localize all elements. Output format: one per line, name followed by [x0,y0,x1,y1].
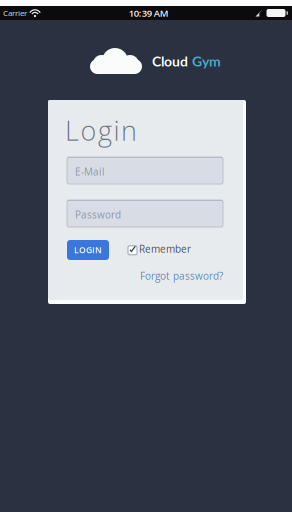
staticText: Gym [192,53,221,69]
staticText: Forgot password? [140,269,223,283]
button[interactable]: Remember [128,242,191,256]
staticText: Login [65,112,137,149]
staticText: Carrier [3,8,27,18]
staticText: LOGIN [74,244,102,256]
staticText: E-Mail [75,165,105,178]
staticText: Cloud [152,53,188,69]
button[interactable]: Password [67,200,223,227]
button[interactable]: E-Mail [67,157,223,184]
button[interactable]: Forgot password? [140,269,223,283]
staticText: 10:39 AM [129,6,169,19]
staticText: Remember [139,242,191,256]
staticText: Password [75,208,121,221]
button[interactable]: LOGIN [67,240,109,260]
